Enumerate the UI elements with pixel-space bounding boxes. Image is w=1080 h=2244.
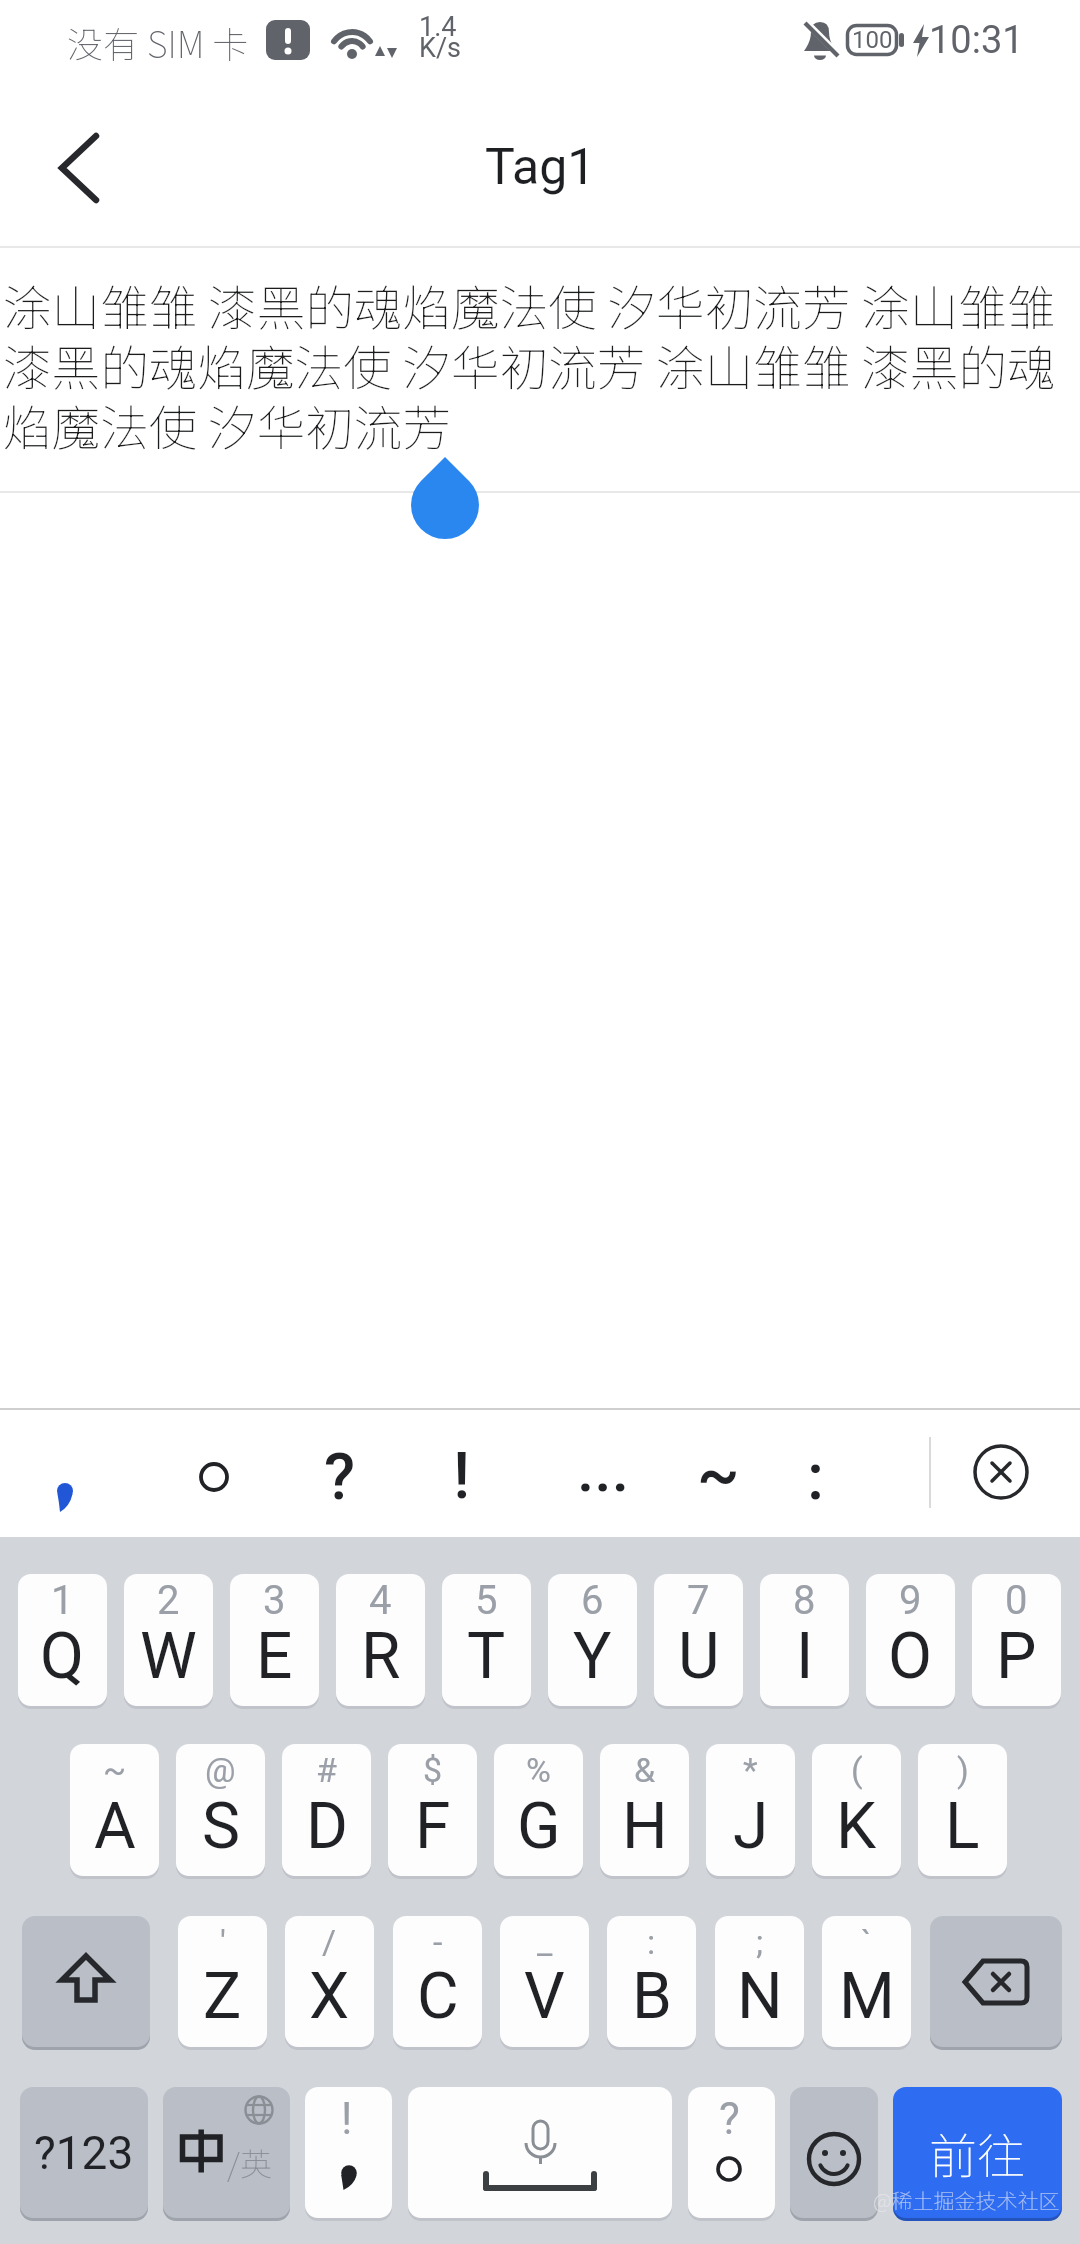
button[interactable] xyxy=(176,1744,265,1876)
staticText: _ xyxy=(537,1922,553,1962)
button[interactable] xyxy=(305,2087,392,2218)
staticText: ? xyxy=(719,2093,740,2145)
staticText: /英 xyxy=(227,2139,272,2185)
button[interactable] xyxy=(548,1574,637,1706)
staticText: H xyxy=(622,1789,668,1864)
staticText: ` xyxy=(861,1922,872,1962)
button[interactable] xyxy=(442,1574,531,1706)
button[interactable] xyxy=(790,2087,878,2218)
button[interactable]: : xyxy=(770,1437,860,1517)
staticText: Z xyxy=(203,1959,242,2034)
staticText: ; xyxy=(756,1922,764,1962)
button[interactable] xyxy=(893,2087,1062,2218)
button[interactable] xyxy=(706,1744,795,1876)
button[interactable]: ! xyxy=(417,1436,507,1516)
staticText: I xyxy=(796,1619,814,1694)
button[interactable] xyxy=(812,1744,901,1876)
button[interactable] xyxy=(18,1574,107,1706)
button[interactable] xyxy=(70,1744,159,1876)
staticText: % xyxy=(526,1750,551,1790)
staticText: Tag1 xyxy=(485,138,596,197)
staticText: & xyxy=(634,1750,656,1790)
staticText: V xyxy=(524,1959,565,2034)
staticText: * xyxy=(743,1750,758,1790)
staticText: B xyxy=(632,1959,672,2034)
staticText: - xyxy=(433,1922,443,1962)
staticText: 0 xyxy=(1005,1577,1028,1621)
staticText: F xyxy=(415,1789,451,1864)
button[interactable] xyxy=(494,1744,583,1876)
staticText: 100 xyxy=(852,26,893,54)
staticText: K xyxy=(836,1789,877,1864)
staticText: N xyxy=(737,1959,783,2034)
button[interactable] xyxy=(388,1744,477,1876)
staticText: 6 xyxy=(581,1577,604,1621)
button[interactable] xyxy=(715,1916,804,2047)
button[interactable] xyxy=(866,1574,955,1706)
button[interactable] xyxy=(688,2087,775,2218)
staticText: ... xyxy=(577,1433,629,1506)
button[interactable] xyxy=(822,1916,911,2047)
button[interactable] xyxy=(22,1916,150,2047)
staticText: D xyxy=(306,1789,348,1864)
staticText: Q xyxy=(40,1619,85,1694)
staticText: ! xyxy=(453,1439,471,1514)
staticText: ! xyxy=(341,2093,353,2145)
staticText: W xyxy=(140,1619,197,1694)
staticText: 前往 xyxy=(929,2118,1026,2188)
staticText: O xyxy=(888,1619,933,1694)
staticText: 10:31 xyxy=(929,18,1024,63)
button[interactable] xyxy=(21,1432,111,1512)
button[interactable] xyxy=(163,2087,290,2218)
button[interactable] xyxy=(930,1916,1062,2047)
button[interactable] xyxy=(654,1574,743,1706)
staticText: G xyxy=(517,1789,561,1864)
staticText: 1.4 xyxy=(419,11,457,43)
staticText: 9 xyxy=(899,1577,922,1621)
staticText: @ xyxy=(205,1750,236,1790)
staticText: X xyxy=(309,1959,350,2034)
button[interactable] xyxy=(408,2087,672,2218)
button[interactable] xyxy=(178,1916,267,2047)
staticText: ~ xyxy=(103,1750,127,1790)
staticText: : xyxy=(647,1922,656,1962)
button[interactable]: ~ xyxy=(673,1434,763,1514)
button[interactable] xyxy=(918,1744,1007,1876)
button[interactable] xyxy=(336,1574,425,1706)
staticText: U xyxy=(678,1619,720,1694)
staticText: ?123 xyxy=(34,2126,134,2180)
staticText: K/s xyxy=(419,32,462,64)
staticText: # xyxy=(316,1750,337,1790)
staticText: ~ xyxy=(697,1437,740,1512)
staticText: / xyxy=(322,1922,337,1962)
button[interactable] xyxy=(966,1437,1036,1507)
button[interactable] xyxy=(285,1916,374,2047)
button[interactable] xyxy=(40,130,120,206)
staticText: $ xyxy=(423,1750,443,1790)
button[interactable] xyxy=(20,2087,148,2218)
button[interactable] xyxy=(230,1574,319,1706)
button[interactable] xyxy=(500,1916,589,2047)
button[interactable]: ? xyxy=(295,1437,385,1517)
staticText: ' xyxy=(220,1922,226,1962)
staticText: 5 xyxy=(475,1577,498,1621)
staticText: L xyxy=(945,1789,980,1864)
staticText: 2 xyxy=(157,1577,180,1621)
button[interactable] xyxy=(393,1916,482,2047)
button[interactable] xyxy=(124,1574,213,1706)
button[interactable]: ... xyxy=(558,1429,648,1509)
button[interactable] xyxy=(760,1574,849,1706)
button[interactable] xyxy=(607,1916,696,2047)
button[interactable] xyxy=(600,1744,689,1876)
staticText: 1 xyxy=(51,1577,74,1621)
button[interactable] xyxy=(282,1744,371,1876)
staticText: 4 xyxy=(369,1577,392,1621)
staticText: M xyxy=(839,1959,895,2034)
button[interactable] xyxy=(168,1432,258,1512)
staticText: : xyxy=(807,1440,824,1515)
staticText: E xyxy=(256,1619,293,1694)
staticText: 3 xyxy=(263,1577,286,1621)
staticText: T xyxy=(467,1619,506,1694)
staticText: ( xyxy=(851,1750,863,1790)
button[interactable] xyxy=(972,1574,1061,1706)
